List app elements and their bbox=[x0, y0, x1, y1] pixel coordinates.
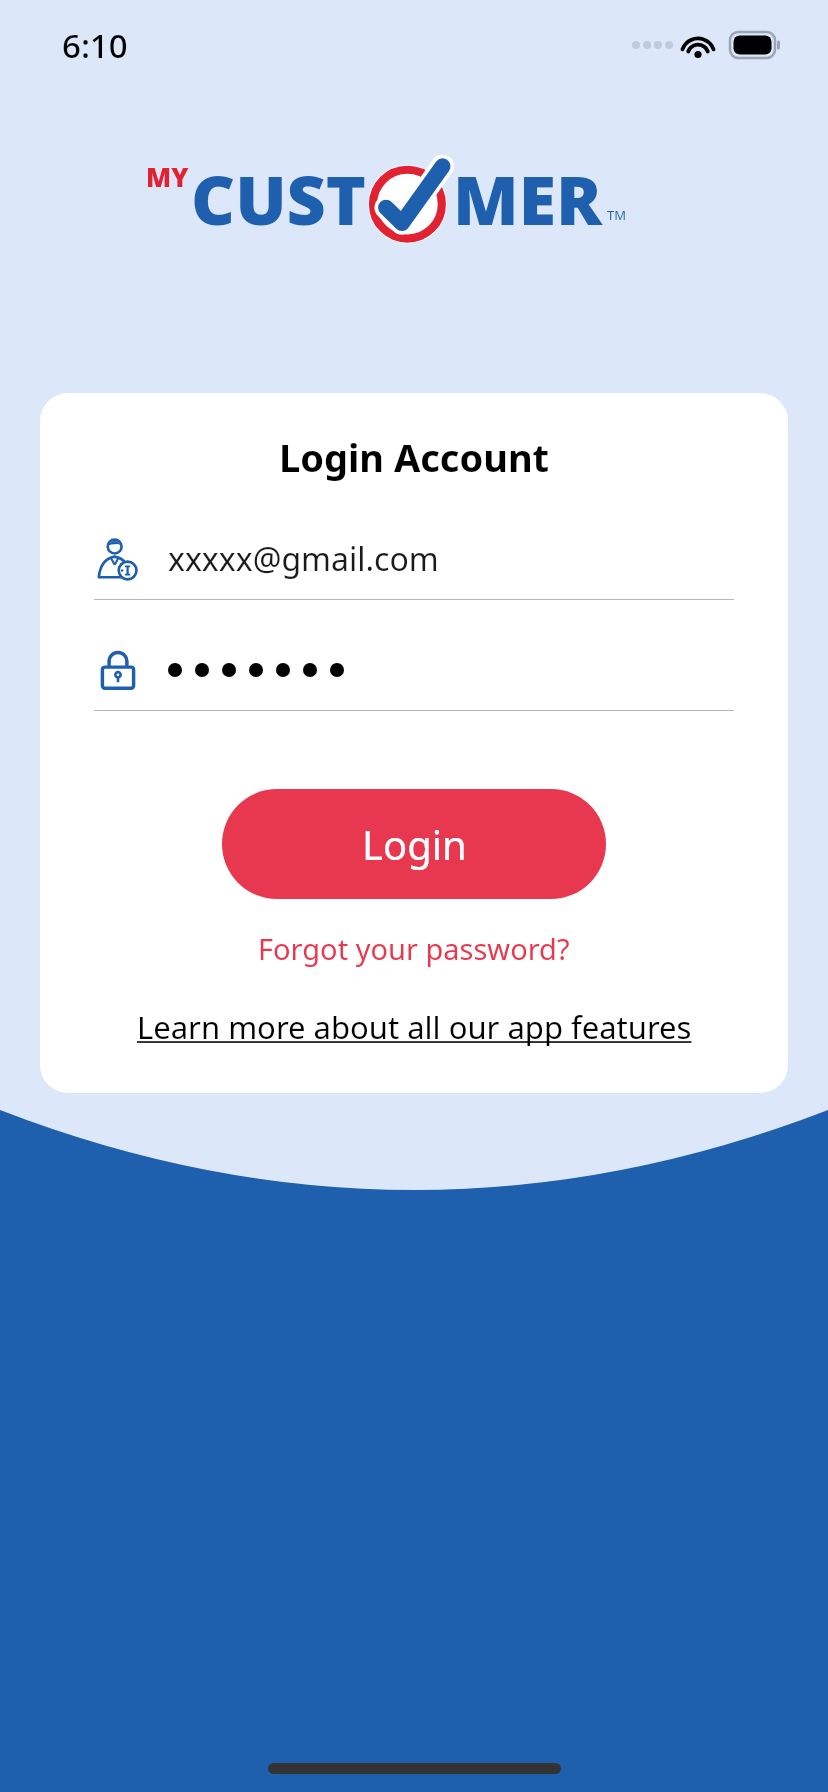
button[interactable]: Login bbox=[222, 789, 606, 899]
staticText: MER bbox=[453, 152, 603, 245]
staticText: Login bbox=[362, 817, 467, 871]
button[interactable]: xxxxx@gmail.com bbox=[94, 535, 734, 600]
staticText: Learn more about all our app features bbox=[137, 1006, 692, 1048]
button[interactable]: Forgot your password? bbox=[258, 929, 570, 968]
staticText: xxxxx@gmail.com bbox=[168, 537, 439, 581]
staticText: TM bbox=[607, 206, 627, 224]
staticText: Forgot your password? bbox=[258, 929, 570, 968]
button[interactable]: Learn more about all our app features bbox=[137, 1006, 692, 1048]
staticText: 6:10 bbox=[62, 23, 128, 68]
staticText: MY bbox=[146, 159, 189, 194]
button[interactable] bbox=[94, 646, 734, 711]
staticText: CUST bbox=[191, 152, 367, 245]
staticText: Login Account bbox=[279, 431, 550, 483]
